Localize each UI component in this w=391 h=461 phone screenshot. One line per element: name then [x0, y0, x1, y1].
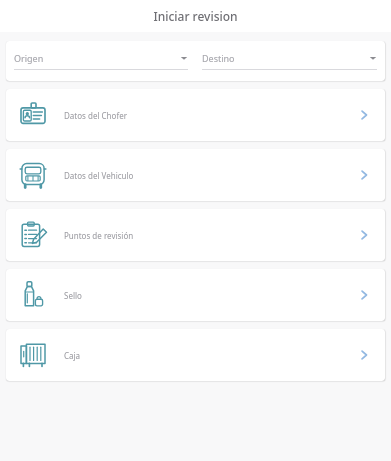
other: Abrir Datos del Chofer	[357, 108, 371, 122]
button[interactable]: Origen	[14, 52, 188, 70]
staticText: Origen	[14, 52, 180, 64]
button[interactable]: Caja	[6, 329, 385, 381]
staticText: Datos del Chofer	[64, 110, 357, 121]
button[interactable]: Datos del Chofer	[6, 89, 385, 141]
staticText: Caja	[64, 350, 357, 361]
other: Abrir Caja	[357, 348, 371, 362]
staticText: Puntos de revisión	[64, 230, 357, 241]
button[interactable]: Destino	[202, 52, 377, 70]
button[interactable]: Datos del Vehiculo	[6, 149, 385, 201]
staticText: Sello	[64, 290, 357, 301]
button[interactable]: Sello	[6, 269, 385, 321]
other: Abrir Datos del Vehiculo	[357, 168, 371, 182]
staticText: Datos del Vehiculo	[64, 170, 357, 181]
staticText: Destino	[202, 52, 369, 64]
other: Abrir Puntos de revisión	[357, 228, 371, 242]
button[interactable]: Puntos de revisión	[6, 209, 385, 261]
staticText: Iniciar revision	[153, 8, 238, 24]
other: Abrir Sello	[357, 288, 371, 302]
